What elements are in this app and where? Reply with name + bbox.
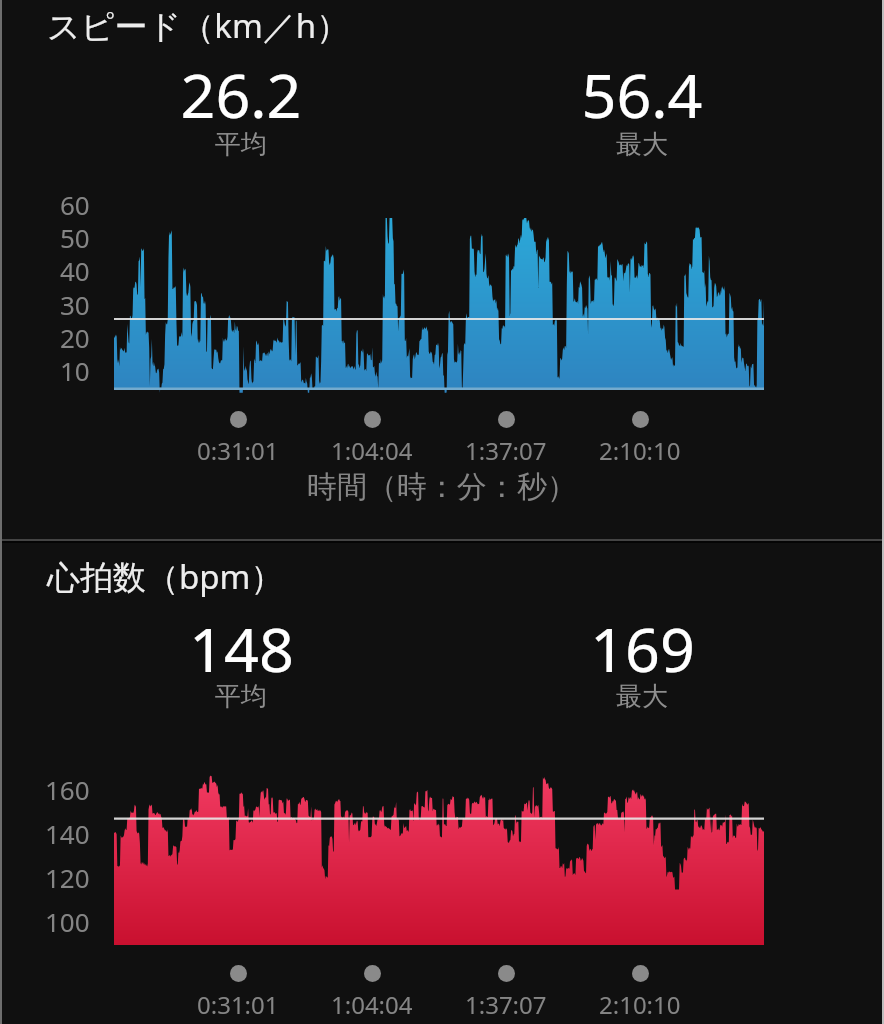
staticText: 最大 — [616, 680, 668, 713]
staticText: 160 — [45, 772, 90, 807]
staticText: 2:10:10 — [599, 988, 681, 1021]
staticText: 40 — [60, 253, 90, 288]
staticText: 20 — [60, 320, 90, 355]
staticText: 10 — [60, 353, 90, 388]
staticText: 心拍数（bpm） — [47, 554, 284, 599]
staticText: 1:37:07 — [465, 434, 547, 467]
staticText: 最大 — [616, 128, 668, 161]
staticText: 平均 — [215, 128, 267, 161]
staticText: 50 — [60, 220, 90, 255]
staticText: 1:37:07 — [465, 988, 547, 1021]
staticText: 120 — [45, 860, 90, 895]
staticText: 148 — [189, 607, 294, 690]
staticText: 1:04:04 — [331, 434, 413, 467]
staticText: 100 — [45, 904, 90, 939]
staticText: 56.4 — [581, 53, 703, 136]
staticText: 平均 — [215, 680, 267, 713]
staticText: 2:10:10 — [599, 434, 681, 467]
staticText: 1:04:04 — [331, 988, 413, 1021]
staticText: 時間（時：分：秒） — [307, 468, 577, 506]
staticText: 140 — [45, 816, 90, 851]
staticText: 0:31:01 — [197, 988, 279, 1021]
staticText: 169 — [590, 607, 695, 690]
staticText: 30 — [60, 287, 90, 322]
staticText: 60 — [60, 187, 90, 222]
staticText: 0:31:01 — [197, 434, 279, 467]
staticText: 26.2 — [180, 53, 302, 136]
staticText: スピード（km／h） — [47, 3, 350, 48]
